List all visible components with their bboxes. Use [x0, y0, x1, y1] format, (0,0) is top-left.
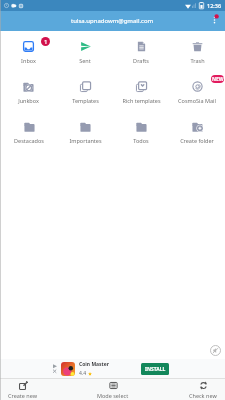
- button[interactable]: Destacados: [0, 111, 57, 151]
- button[interactable]: Create folder: [169, 111, 225, 151]
- button[interactable]: Mode select: [90, 379, 135, 400]
- button[interactable]: Inbox: [0, 31, 57, 71]
- button[interactable]: CosmoSia Mail: [169, 71, 225, 111]
- button[interactable]: Drafts: [113, 31, 169, 71]
- staticText: 4.4: [79, 370, 87, 377]
- staticText: Destacados: [14, 137, 44, 144]
- staticText: Check new: [189, 392, 217, 399]
- button[interactable]: INSTALL: [141, 363, 169, 375]
- staticText: CosmoSia Mail: [178, 97, 216, 104]
- staticText: Mode select: [97, 392, 129, 399]
- button[interactable]: Importantes: [57, 111, 113, 151]
- button[interactable]: Templates: [57, 71, 113, 111]
- staticText: Coin Master: [79, 361, 109, 368]
- staticText: Rich templates: [122, 97, 161, 104]
- button[interactable]: Junkbox: [0, 71, 57, 111]
- button[interactable]: Create new: [0, 379, 45, 400]
- staticText: Drafts: [133, 57, 149, 64]
- staticText: Importantes: [69, 137, 102, 144]
- button[interactable]: More options: [207, 11, 225, 31]
- staticText: 12:36: [207, 2, 222, 9]
- staticText: Templates: [72, 97, 99, 104]
- staticText: Create new: [8, 392, 38, 399]
- staticText: 1: [44, 38, 48, 46]
- staticText: Inbox: [21, 57, 36, 64]
- button[interactable]: Todos: [113, 111, 169, 151]
- staticText: Trash: [190, 57, 205, 64]
- staticText: Todos: [133, 137, 149, 144]
- staticText: INSTALL: [145, 366, 166, 373]
- button[interactable]: Check new: [180, 379, 225, 400]
- staticText: Sent: [79, 57, 91, 64]
- button[interactable]: Trash: [169, 31, 225, 71]
- staticText: Junkbox: [18, 97, 39, 104]
- staticText: NEW: [212, 76, 224, 83]
- button[interactable]: Rich templates: [113, 71, 169, 111]
- button[interactable]: Hide ads: [210, 345, 221, 356]
- staticText: tulsa.upnadowm@gmail.com: [71, 17, 154, 25]
- button[interactable]: Sent: [57, 31, 113, 71]
- staticText: Create folder: [180, 137, 214, 144]
